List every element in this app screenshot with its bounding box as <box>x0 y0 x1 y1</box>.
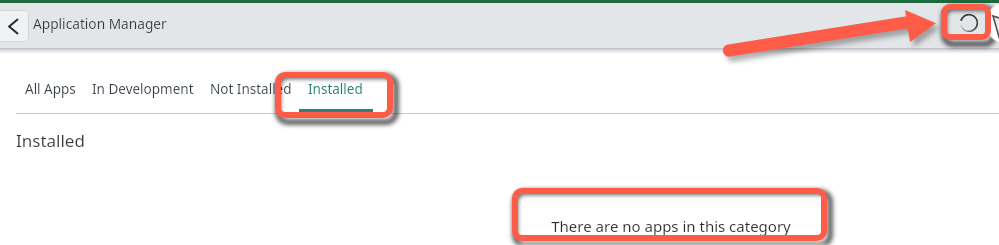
button[interactable]: Refresh <box>951 5 987 41</box>
staticText: Not Installed <box>210 80 292 98</box>
button[interactable]: There are no apps in this category <box>551 216 791 236</box>
staticText: Application Manager <box>33 14 167 33</box>
button[interactable]: All Apps <box>25 80 76 98</box>
button[interactable]: Installed <box>16 129 85 152</box>
staticText: There are no apps in this category <box>551 216 791 236</box>
button[interactable]: Not Installed <box>210 80 292 98</box>
button[interactable]: Back <box>0 10 29 42</box>
staticText: Installed <box>308 80 363 98</box>
button[interactable]: In Development <box>92 80 194 98</box>
staticText: In Development <box>92 80 194 98</box>
staticText: Installed <box>16 129 85 152</box>
staticText: All Apps <box>25 80 76 98</box>
button[interactable]: Installed <box>308 80 363 98</box>
